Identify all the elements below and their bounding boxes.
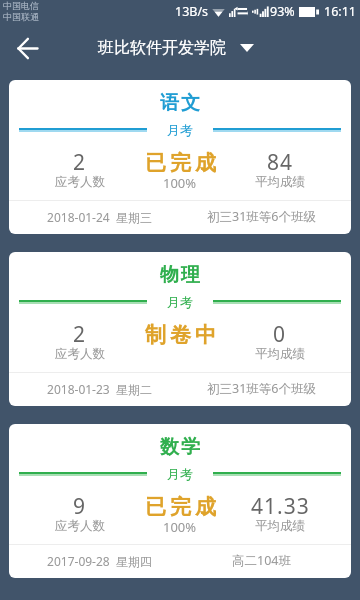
staticText: 应考人数: [55, 174, 105, 190]
staticText: 已完成: [143, 494, 218, 520]
button[interactable]: 物理: [9, 252, 351, 406]
staticText: 9: [73, 492, 87, 521]
staticText: 2: [73, 148, 87, 177]
staticText: 100%: [163, 518, 197, 536]
staticText: 中国电信: [3, 0, 39, 11]
staticText: 平均成绩: [255, 518, 305, 534]
staticText: 41.33: [251, 492, 310, 521]
button[interactable]: 语文: [9, 80, 351, 234]
staticText: 2018-01-23 星期二: [14, 381, 185, 397]
button[interactable]: 班比软件开发学院: [98, 38, 254, 58]
staticText: 93%: [270, 3, 295, 20]
staticText: 已完成: [143, 150, 218, 176]
staticText: 100%: [163, 174, 197, 192]
staticText: 应考人数: [55, 346, 105, 362]
staticText: 数学: [159, 435, 201, 459]
staticText: 月考: [167, 122, 193, 138]
staticText: 84: [267, 148, 294, 177]
staticText: 月考: [167, 466, 193, 482]
staticText: 平均成绩: [255, 346, 305, 362]
staticText: 2: [73, 320, 87, 349]
staticText: 初三31班等6个班级: [176, 208, 347, 225]
button[interactable]: Back: [8, 29, 46, 67]
staticText: 语文: [159, 91, 201, 115]
staticText: 应考人数: [55, 518, 105, 534]
staticText: 初三31班等6个班级: [176, 380, 347, 397]
staticText: 班比软件开发学院: [98, 38, 226, 58]
staticText: 2018-01-24 星期三: [14, 209, 185, 225]
staticText: 物理: [159, 263, 201, 287]
staticText: 0: [273, 320, 287, 349]
staticText: 中国联通: [3, 11, 39, 22]
staticText: 13B/s: [175, 3, 209, 20]
staticText: 高二104班: [176, 552, 347, 569]
staticText: 16:11: [324, 3, 356, 20]
staticText: 月考: [167, 294, 193, 310]
staticText: 制卷中: [143, 322, 218, 348]
button[interactable]: 数学: [9, 424, 351, 578]
staticText: 2017-09-28 星期四: [14, 553, 185, 569]
staticText: 平均成绩: [255, 174, 305, 190]
